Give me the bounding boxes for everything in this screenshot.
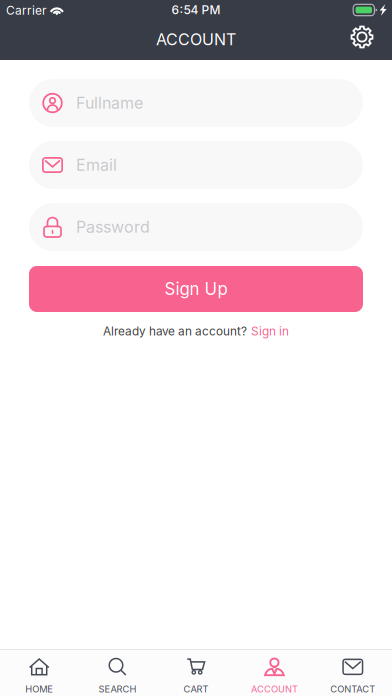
staticText: ACCOUNT xyxy=(251,683,298,695)
button[interactable]: Sign Up xyxy=(29,266,363,312)
staticText: Sign Up xyxy=(164,279,227,299)
button[interactable]: Fullname xyxy=(29,79,363,127)
staticText: Already have an account? xyxy=(103,324,247,338)
button[interactable]: ACCOUNT xyxy=(235,650,314,696)
button[interactable]: CONTACT xyxy=(314,650,392,696)
staticText: Email xyxy=(76,155,117,175)
staticText: Password xyxy=(76,217,150,237)
button[interactable]: Sign in xyxy=(251,324,289,338)
button[interactable]: Email xyxy=(29,141,363,189)
staticText: 6:54 PM xyxy=(171,3,220,17)
staticText: Carrier xyxy=(6,3,47,18)
staticText: ACCOUNT xyxy=(156,30,236,49)
staticText: SEARCH xyxy=(99,683,137,695)
button[interactable]: SEARCH xyxy=(78,650,157,696)
button[interactable]: Settings xyxy=(343,19,381,55)
button[interactable]: Password xyxy=(29,203,363,251)
staticText: CART xyxy=(183,683,208,695)
staticText: CONTACT xyxy=(330,683,375,695)
staticText: HOME xyxy=(25,683,53,695)
button[interactable]: CART xyxy=(157,650,235,696)
staticText: Sign in xyxy=(251,324,289,338)
button[interactable]: HOME xyxy=(0,650,78,696)
staticText: Fullname xyxy=(76,93,143,113)
